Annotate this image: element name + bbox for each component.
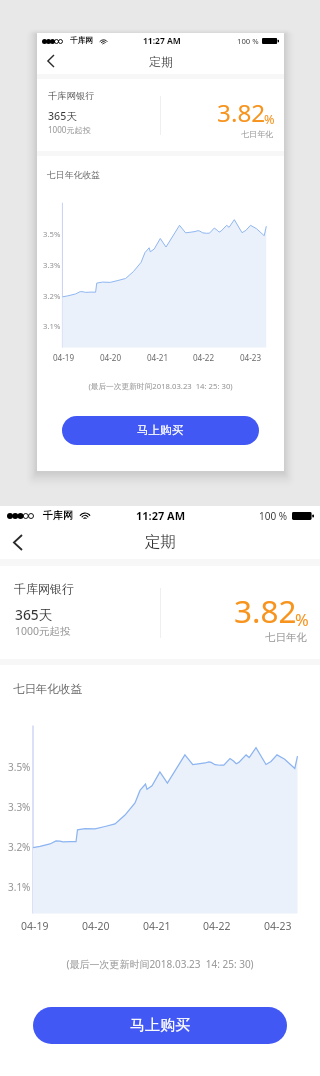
staticText: 3.5% — [8, 760, 31, 774]
staticText: 3.3% — [43, 260, 61, 270]
staticText: 3.82 — [217, 96, 266, 129]
staticText: 11:27 AM — [136, 508, 186, 523]
staticText: % — [295, 608, 309, 630]
staticText: 04-23 — [264, 919, 292, 933]
staticText: % — [264, 110, 275, 127]
staticText: 定期 — [149, 54, 173, 69]
staticText: 365天 — [15, 605, 53, 624]
staticText: 3.3% — [8, 800, 31, 814]
staticText: 七日年化收益 — [47, 169, 101, 180]
button[interactable]: Back — [37, 48, 63, 74]
staticText: 马上购买 — [137, 423, 184, 438]
staticText: (最后一次更新时间2018.03.23 14: 25: 30) — [37, 381, 284, 392]
staticText: 04-19 — [21, 919, 49, 933]
staticText: 04-22 — [193, 352, 215, 363]
staticText: 千库网银行 — [48, 90, 95, 102]
staticText: 3.2% — [8, 840, 31, 854]
staticText: 千库网银行 — [14, 581, 74, 596]
staticText: 04-20 — [82, 919, 110, 933]
staticText: 3.82 — [234, 589, 297, 632]
staticText: 04-21 — [143, 919, 171, 933]
staticText: 3.2% — [43, 291, 61, 301]
staticText: 千库网 — [70, 36, 94, 46]
staticText: 04-19 — [53, 352, 75, 363]
staticText: 1000元起投 — [48, 124, 91, 135]
staticText: 100 % — [259, 509, 288, 523]
staticText: 11:27 AM — [143, 35, 181, 47]
staticText: 04-22 — [203, 919, 231, 933]
staticText: 1000元起投 — [15, 624, 71, 638]
staticText: 04-23 — [240, 352, 262, 363]
staticText: 七日年化 — [265, 631, 307, 644]
staticText: 定期 — [145, 532, 176, 552]
staticText: 七日年化收益 — [13, 682, 82, 696]
staticText: 3.1% — [8, 880, 31, 894]
staticText: 04-21 — [147, 352, 169, 363]
staticText: (最后一次更新时间2018.03.23 14: 25: 30) — [0, 957, 320, 971]
staticText: 七日年化 — [241, 129, 274, 139]
staticText: 3.5% — [43, 229, 61, 239]
button[interactable]: Back — [0, 525, 34, 559]
staticText: 千库网 — [43, 509, 73, 522]
staticText: 365天 — [48, 109, 77, 124]
staticText: 3.1% — [43, 321, 61, 331]
button[interactable]: 马上购买 — [33, 1007, 287, 1044]
button[interactable]: 马上购买 — [62, 416, 259, 445]
staticText: 马上购买 — [130, 1016, 190, 1035]
staticText: 04-20 — [100, 352, 122, 363]
staticText: 100 % — [237, 36, 259, 46]
